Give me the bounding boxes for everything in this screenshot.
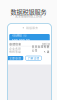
staticText: 可申请额度（元）: [12, 34, 28, 37]
staticText: 税银服务: [26, 26, 38, 30]
staticText: 查看全部: [42, 42, 50, 46]
button[interactable]: 了解详情: [25, 56, 41, 60]
staticText: 500,000.00: [12, 38, 30, 43]
staticText: 纳税等级: [9, 50, 21, 53]
staticText: 申请信息: [9, 42, 21, 46]
staticText: 安全便捷的线上办理: [15, 14, 42, 18]
staticText: 某某科技有限公司: [32, 45, 50, 52]
staticText: 数据税银服务: [10, 7, 46, 16]
staticText: 了解详情: [27, 56, 39, 60]
staticText: A 级: [44, 50, 50, 53]
staticText: 立即申请: [9, 56, 21, 60]
button[interactable]: 立即申请: [7, 56, 23, 60]
staticText: 企业名称: [9, 47, 21, 50]
